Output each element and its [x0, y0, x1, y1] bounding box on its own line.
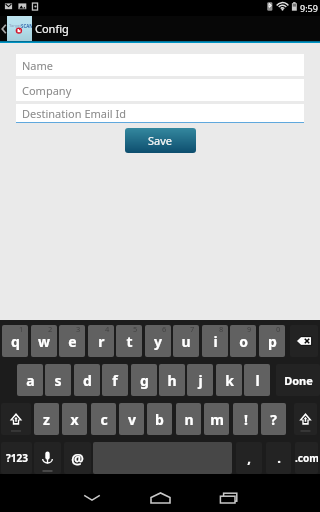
- staticText: @: [71, 449, 84, 468]
- button[interactable]: Name: [16, 54, 304, 76]
- button[interactable]: z: [34, 403, 59, 435]
- staticText: Done: [284, 373, 313, 388]
- button[interactable]: f: [102, 364, 128, 396]
- staticText: u: [181, 332, 191, 351]
- staticText: v: [128, 410, 136, 429]
- button[interactable]: l: [244, 364, 270, 396]
- staticText: 4: [105, 325, 110, 334]
- button[interactable]: r: [88, 325, 114, 357]
- staticText: c: [100, 410, 108, 429]
- staticText: .com: [295, 451, 318, 465]
- staticText: 8: [219, 325, 224, 334]
- button[interactable]: Target: [0, 16, 320, 41]
- button[interactable]: o: [230, 325, 256, 357]
- button[interactable]: a: [17, 364, 43, 396]
- staticText: ?123: [6, 451, 28, 465]
- button[interactable]: Destination Email Id: [16, 104, 304, 122]
- staticText: y: [154, 332, 162, 351]
- staticText: i: [213, 332, 218, 351]
- button[interactable]: Voice input: [34, 442, 61, 474]
- staticText: 0: [276, 325, 281, 334]
- staticText: !: [244, 410, 248, 429]
- button[interactable]: e: [59, 325, 85, 357]
- button[interactable]: t: [116, 325, 142, 357]
- staticText: g: [140, 371, 149, 390]
- staticText: s: [54, 371, 62, 390]
- staticText: l: [255, 371, 260, 390]
- button[interactable]: g: [131, 364, 157, 396]
- button[interactable]: d: [74, 364, 100, 396]
- staticText: k: [225, 371, 234, 390]
- button[interactable]: Shift: [1, 403, 31, 435]
- button[interactable]: w: [31, 325, 57, 357]
- button[interactable]: Company: [16, 79, 304, 101]
- staticText: Save: [148, 133, 173, 148]
- staticText: b: [155, 410, 164, 429]
- button[interactable]: Home: [144, 490, 176, 506]
- staticText: r: [98, 332, 105, 351]
- staticText: x: [70, 410, 79, 429]
- staticText: 2: [48, 325, 53, 334]
- button[interactable]: x: [62, 403, 87, 435]
- button[interactable]: Delete: [290, 325, 318, 357]
- button[interactable]: u: [173, 325, 199, 357]
- button[interactable]: y: [145, 325, 171, 357]
- button[interactable]: !: [233, 403, 258, 435]
- button[interactable]: Recent apps: [213, 490, 245, 506]
- staticText: 7: [190, 325, 195, 334]
- staticText: j: [198, 371, 203, 390]
- staticText: a: [26, 371, 35, 390]
- button[interactable]: ?: [261, 403, 286, 435]
- staticText: SCAN: [21, 23, 32, 29]
- staticText: 6: [162, 325, 167, 334]
- button[interactable]: c: [91, 403, 116, 435]
- staticText: h: [167, 371, 177, 390]
- button[interactable]: .: [266, 442, 291, 474]
- button[interactable]: b: [147, 403, 172, 435]
- staticText: 1: [19, 325, 24, 334]
- button[interactable]: Save: [125, 128, 196, 153]
- staticText: ?: [270, 410, 277, 429]
- staticText: 3: [76, 325, 81, 334]
- button[interactable]: p: [259, 325, 285, 357]
- staticText: 9: [247, 325, 252, 334]
- button[interactable]: h: [159, 364, 185, 396]
- button[interactable]: Hide keyboard: [76, 484, 108, 506]
- staticText: 5: [133, 325, 138, 334]
- staticText: z: [43, 410, 50, 429]
- button[interactable]: ,: [236, 442, 262, 474]
- button[interactable]: s: [45, 364, 71, 396]
- staticText: Config: [35, 21, 69, 36]
- button[interactable]: q: [2, 325, 28, 357]
- staticText: 9:59: [300, 2, 318, 14]
- staticText: .: [277, 449, 281, 467]
- staticText: n: [184, 410, 194, 429]
- staticText: q: [11, 332, 20, 351]
- button[interactable]: i: [202, 325, 228, 357]
- staticText: f: [112, 371, 118, 390]
- staticText: Name: [22, 58, 54, 73]
- button[interactable]: j: [187, 364, 213, 396]
- staticText: Destination Email Id: [22, 106, 127, 121]
- staticText: d: [83, 371, 92, 390]
- staticText: Target: [9, 23, 21, 29]
- button[interactable]: k: [216, 364, 242, 396]
- staticText: ,: [247, 449, 251, 467]
- button[interactable]: Done: [276, 364, 320, 396]
- staticText: m: [210, 410, 224, 429]
- staticText: o: [239, 332, 248, 351]
- button[interactable]: m: [204, 403, 229, 435]
- staticText: w: [38, 332, 50, 351]
- button[interactable]: @: [64, 442, 91, 474]
- staticText: e: [68, 332, 77, 351]
- button[interactable]: .com: [295, 442, 318, 474]
- staticText: p: [268, 332, 277, 351]
- button[interactable]: ?123: [1, 442, 32, 474]
- button[interactable]: n: [176, 403, 201, 435]
- staticText: Company: [22, 83, 72, 98]
- button[interactable]: v: [119, 403, 144, 435]
- staticText: t: [126, 332, 133, 351]
- button[interactable]: Shift: [294, 403, 317, 435]
